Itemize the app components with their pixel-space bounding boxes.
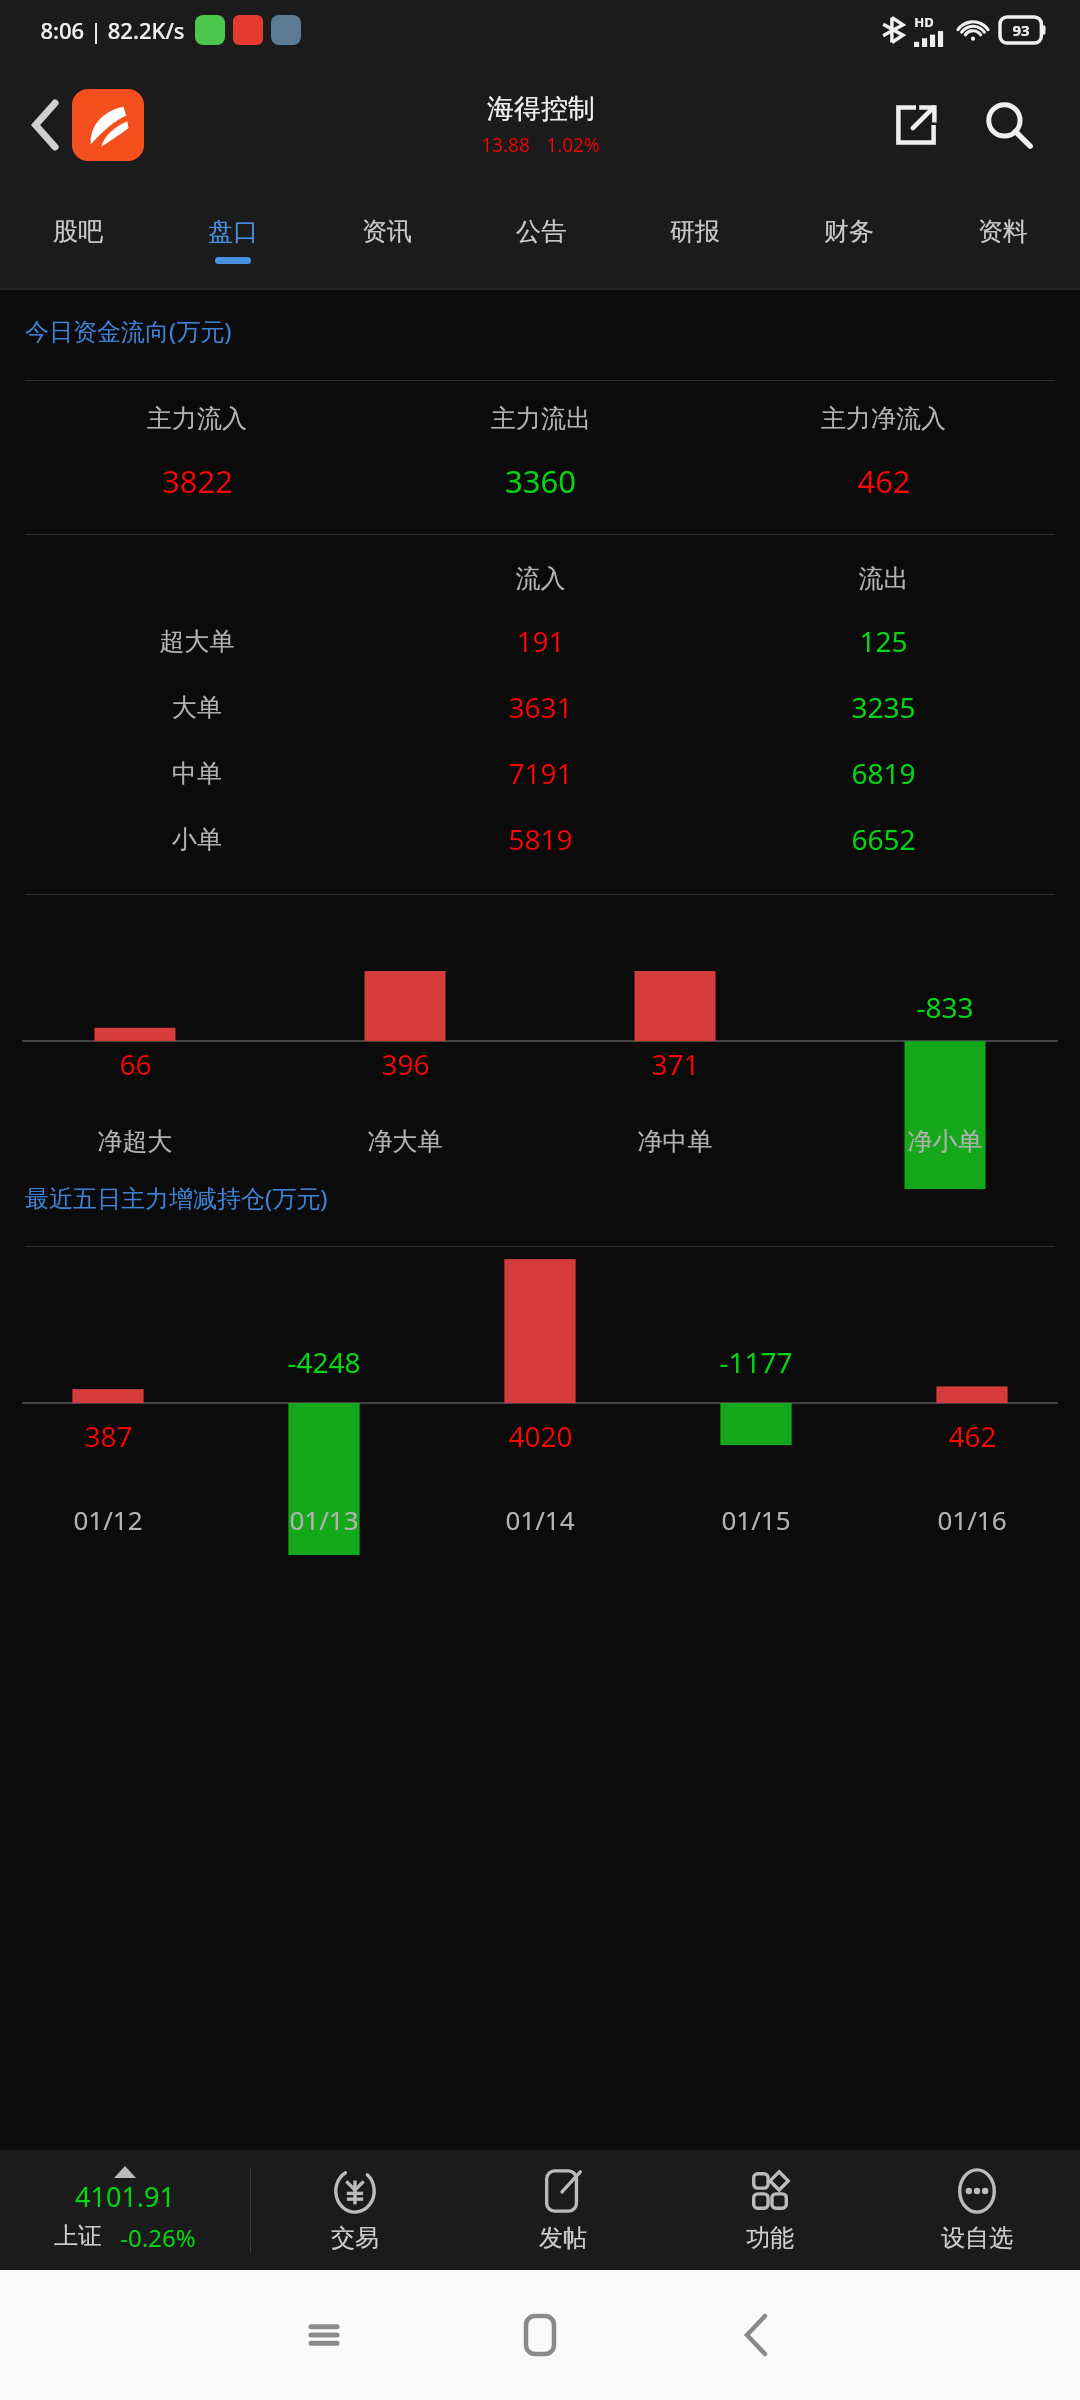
staticText: 13.88	[481, 132, 530, 158]
staticText: 66	[119, 1045, 152, 1083]
staticText: 主力净流入	[821, 403, 946, 434]
button[interactable]: Share	[884, 93, 948, 157]
button[interactable]: Home	[432, 2270, 648, 2400]
staticText: 功能	[746, 2223, 794, 2253]
staticText: 净小单	[810, 1126, 1080, 1157]
staticText: -0.26%	[120, 2221, 196, 2254]
staticText: 462	[948, 1417, 997, 1455]
staticText: 上证	[54, 2221, 102, 2251]
button[interactable]: 发帖	[459, 2150, 666, 2270]
staticText: 01/14	[432, 1502, 648, 1537]
staticText: 396	[381, 1045, 430, 1083]
staticText: -1177	[719, 1343, 793, 1381]
button[interactable]: Back	[648, 2270, 864, 2400]
staticText: 6819	[712, 754, 1055, 792]
button[interactable]: 功能	[666, 2150, 873, 2270]
button[interactable]: Back	[18, 97, 74, 153]
staticText: 盘口	[208, 216, 258, 247]
staticText: 125	[712, 622, 1055, 660]
staticText: 海得控制	[487, 92, 595, 126]
staticText: 3360	[505, 460, 576, 502]
button[interactable]: Search	[974, 90, 1044, 160]
button[interactable]: Recents	[216, 2270, 432, 2400]
staticText: 大单	[25, 692, 369, 723]
staticText: HD	[914, 13, 934, 31]
staticText: 01/13	[216, 1502, 432, 1537]
button[interactable]: 股吧	[0, 190, 155, 290]
staticText: 净超大	[0, 1126, 270, 1157]
staticText: 3631	[369, 688, 712, 726]
staticText: 设自选	[941, 2223, 1013, 2253]
staticText: 3822	[162, 460, 233, 502]
staticText: 发帖	[539, 2223, 587, 2253]
staticText: 主力流出	[491, 403, 591, 434]
staticText: 流入	[369, 563, 712, 594]
staticText: 462	[857, 460, 911, 502]
staticText: 4020	[508, 1417, 573, 1455]
staticText: 公告	[516, 216, 566, 247]
staticText: 财务	[824, 216, 874, 247]
staticText: 01/15	[648, 1502, 864, 1537]
staticText: 小单	[25, 824, 369, 855]
staticText: 01/16	[864, 1502, 1080, 1537]
staticText: 主力流入	[147, 403, 247, 434]
staticText: 资料	[978, 216, 1028, 247]
button[interactable]: 资料	[926, 190, 1080, 290]
staticText: 资讯	[362, 216, 412, 247]
staticText: 最近五日主力增减持仓(万元)	[25, 1181, 328, 1214]
button[interactable]: 公告	[464, 190, 618, 290]
button[interactable]: 资讯	[310, 190, 464, 290]
staticText: 387	[84, 1417, 133, 1455]
staticText: 3235	[712, 688, 1055, 726]
staticText: 超大单	[25, 626, 369, 657]
staticText: 4101.91	[75, 2178, 175, 2215]
staticText: 净中单	[540, 1126, 810, 1157]
button[interactable]: 交易	[251, 2150, 459, 2270]
button[interactable]: 设自选	[873, 2150, 1080, 2270]
staticText: 6652	[712, 820, 1055, 858]
button[interactable]: 4101.91	[0, 2150, 250, 2270]
button[interactable]: 研报	[618, 190, 772, 290]
staticText: 01/12	[0, 1502, 216, 1537]
staticText: 今日资金流向(万元)	[25, 314, 232, 347]
staticText: 中单	[25, 758, 369, 789]
staticText: 5819	[369, 820, 712, 858]
staticText: 流出	[712, 563, 1055, 594]
button[interactable]: 财务	[772, 190, 926, 290]
staticText: 371	[651, 1045, 700, 1083]
button[interactable]: 盘口	[155, 190, 310, 290]
staticText: 净大单	[270, 1126, 540, 1157]
staticText: -4248	[287, 1343, 361, 1381]
staticText: 93	[1012, 20, 1030, 40]
staticText: 股吧	[53, 216, 103, 247]
staticText: 8:06 | 82.2K/s	[40, 15, 185, 45]
staticText: 1.02%	[546, 132, 600, 158]
staticText: 7191	[369, 754, 712, 792]
staticText: -833	[916, 988, 974, 1026]
staticText: 交易	[331, 2223, 379, 2253]
button[interactable]: App logo	[72, 89, 144, 161]
staticText: 研报	[670, 216, 720, 247]
staticText: 191	[369, 622, 712, 660]
